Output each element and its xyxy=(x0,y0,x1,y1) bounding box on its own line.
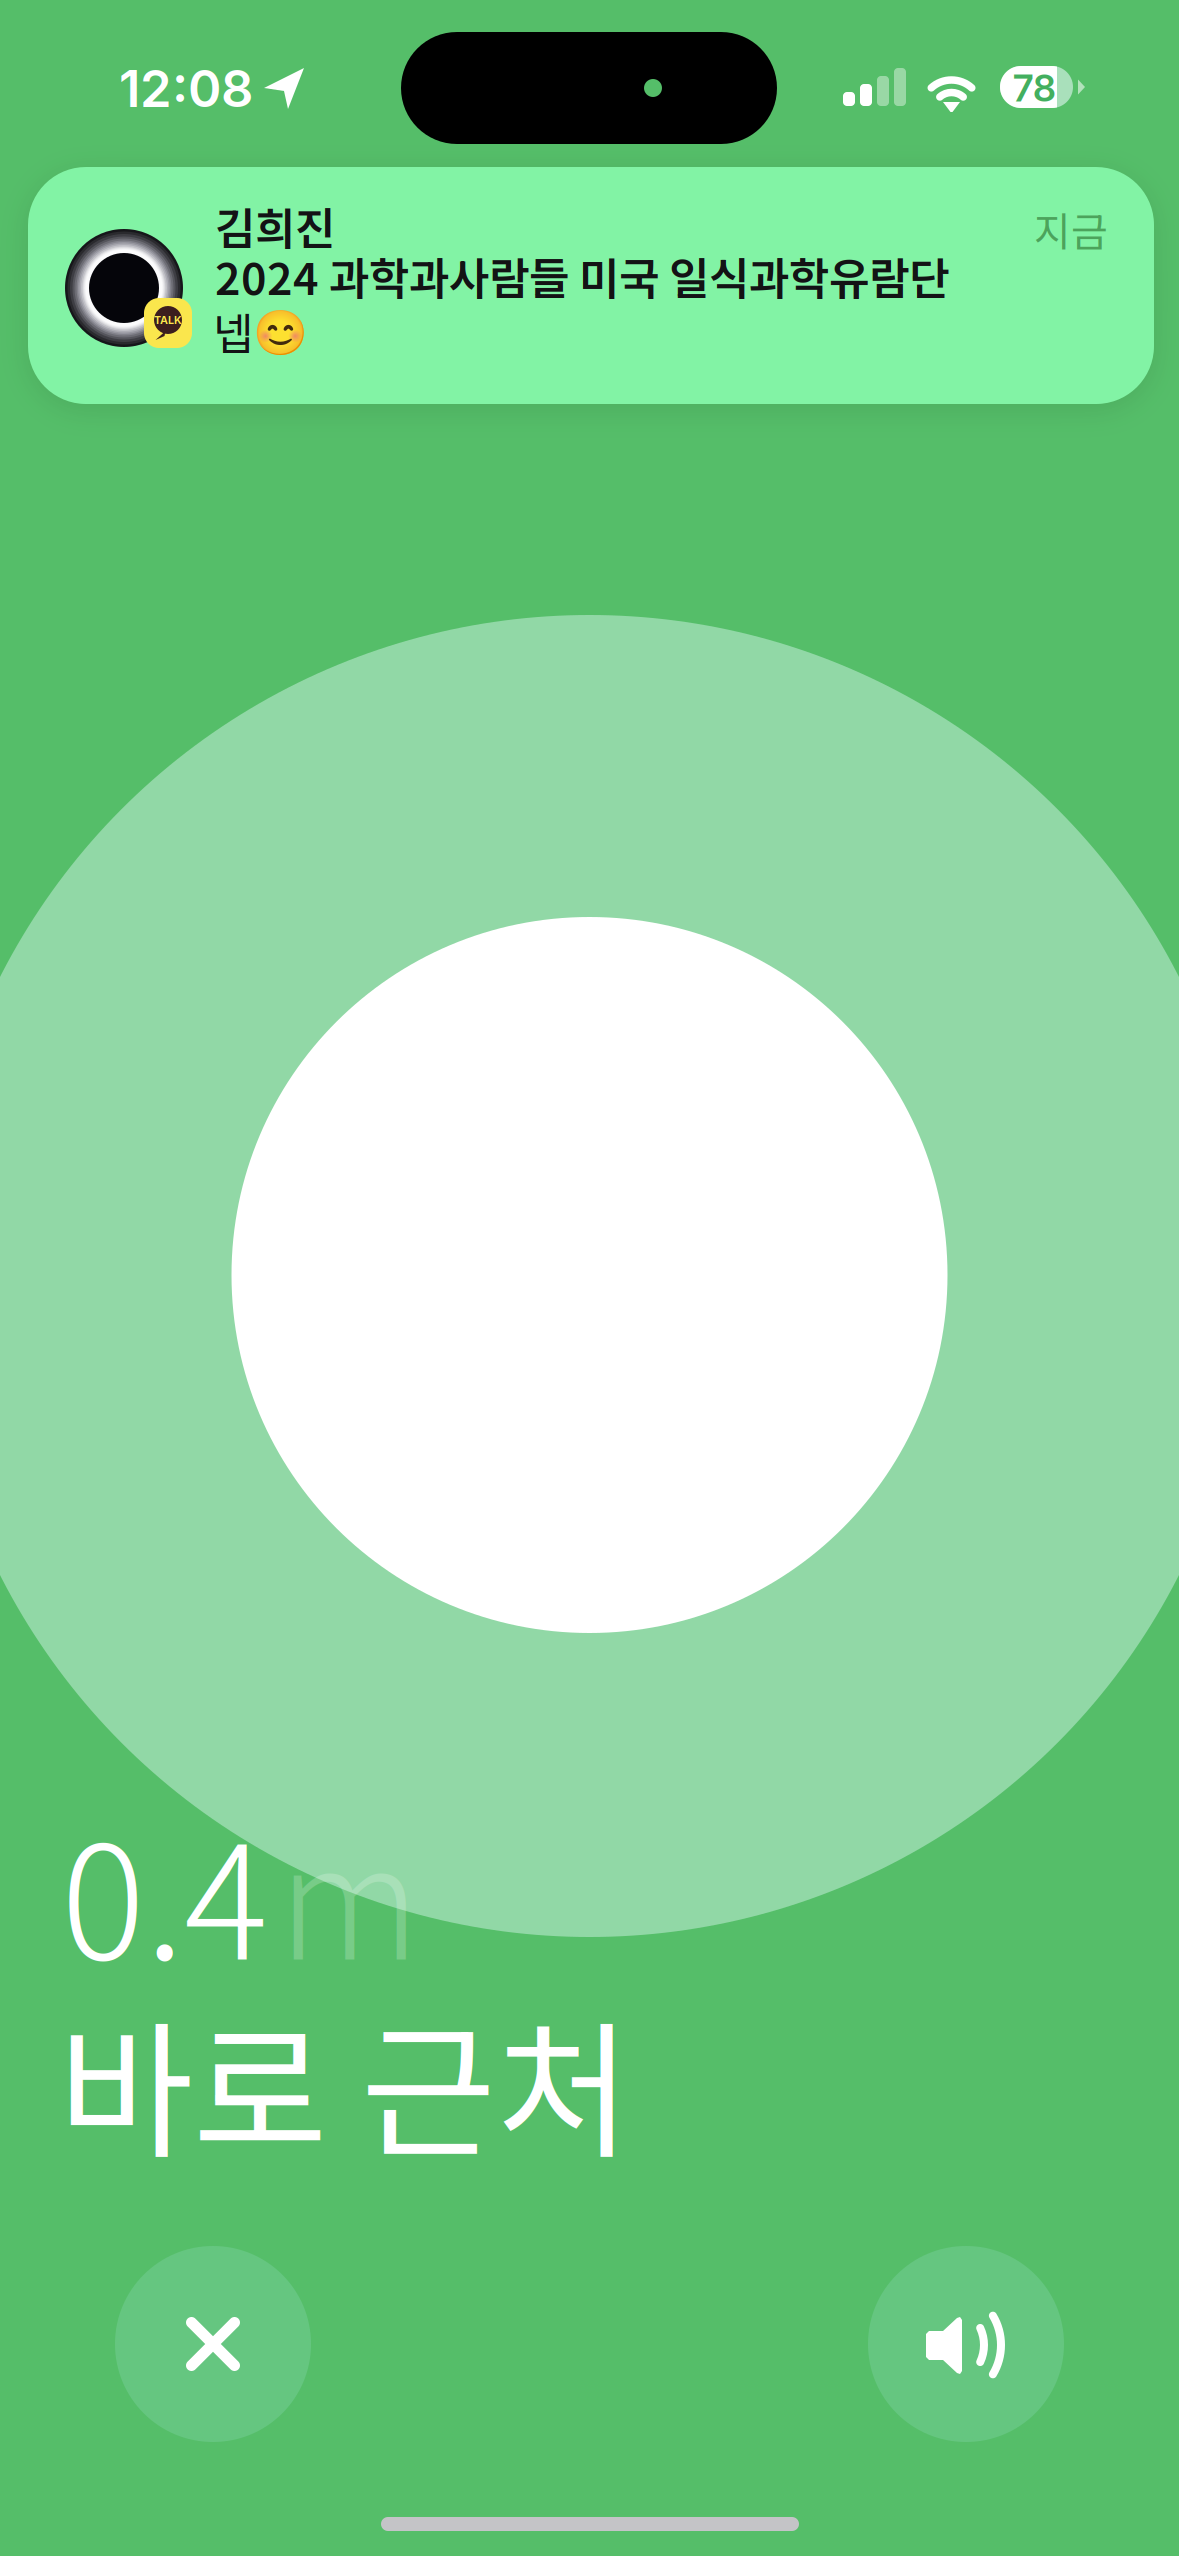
staticText: 김희진 xyxy=(215,194,335,258)
staticText: 지금 xyxy=(1034,200,1108,258)
button[interactable]: Play sound xyxy=(868,2246,1064,2442)
staticText: 78 xyxy=(1013,65,1056,111)
staticText: TALK xyxy=(154,313,182,326)
staticText: 12:08 xyxy=(119,58,253,119)
staticText: 0.4 xyxy=(61,1777,268,2005)
button[interactable]: Close xyxy=(115,2246,311,2442)
staticText: m xyxy=(278,1777,420,2005)
staticText: 2024 과학과사람들 미국 일식과학유람단 xyxy=(215,244,949,308)
button[interactable]: TALK xyxy=(28,167,1154,404)
staticText: 넵😊 xyxy=(213,299,308,363)
staticText: 바로 근처 xyxy=(58,1975,631,2187)
